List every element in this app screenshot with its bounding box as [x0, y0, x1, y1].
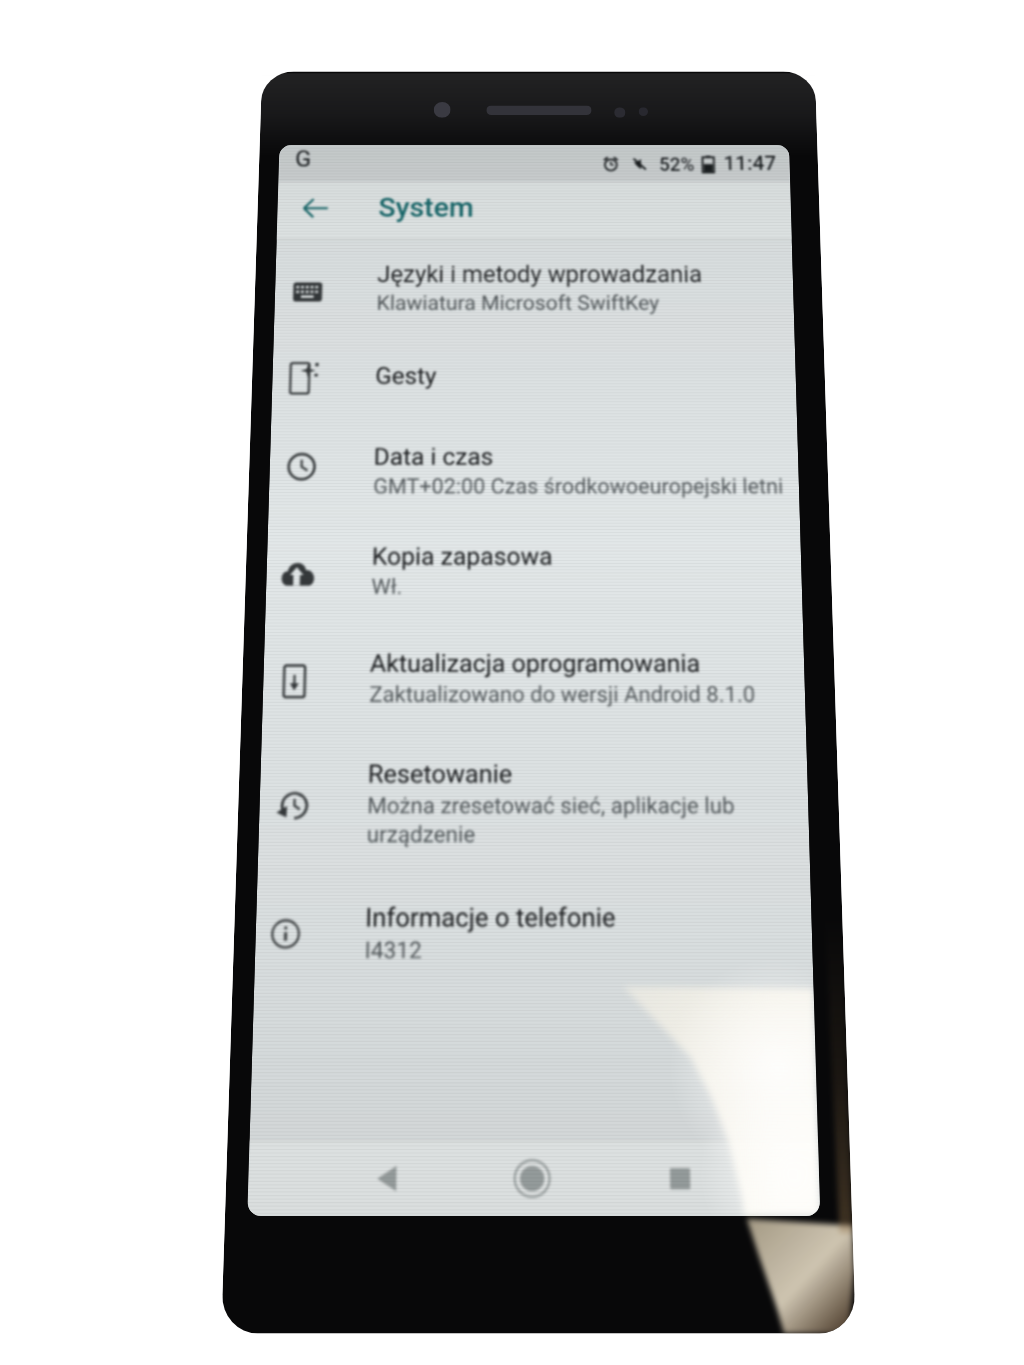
- button[interactable]: Back: [293, 188, 338, 229]
- staticText: Zaktualizowano do wersji Android 8.1.0: [369, 682, 756, 708]
- staticText: Data i czas: [373, 443, 494, 470]
- button[interactable]: Gesty: [271, 344, 797, 411]
- staticText: GMT+02:00 Czas środkowoeuropejski letni: [373, 474, 784, 499]
- button[interactable]: Home: [500, 1140, 563, 1216]
- staticText: 52%: [659, 154, 695, 174]
- button[interactable]: Recents: [647, 1140, 712, 1216]
- staticText: Informacje o telefonie: [365, 902, 616, 933]
- staticText: Resetowanie: [368, 759, 513, 789]
- button[interactable]: Resetowanie: [259, 739, 809, 833]
- staticText: Języki i metody wprowadzania: [377, 261, 703, 288]
- staticText: Aktualizacja oprogramowania: [370, 649, 701, 678]
- button[interactable]: Informacje o telefonie: [254, 882, 813, 978]
- staticText: 11:47: [723, 152, 777, 175]
- staticText: Gesty: [375, 362, 437, 389]
- button[interactable]: Kopia zapasowa: [265, 523, 803, 613]
- staticText: Klawiatura Microsoft SwiftKey: [376, 291, 660, 315]
- staticText: Wł.: [371, 574, 403, 600]
- button[interactable]: Aktualizacja oprogramowania: [262, 629, 806, 721]
- button[interactable]: Data i czas: [268, 424, 800, 512]
- button[interactable]: Języki i metody wprowadzania: [274, 243, 794, 327]
- staticText: Kopia zapasowa: [372, 542, 553, 570]
- staticText: System: [378, 191, 474, 223]
- staticText: G: [295, 146, 312, 172]
- button[interactable]: Back: [354, 1140, 419, 1216]
- staticText: Można zresetować sieć, aplikacje lub urz…: [366, 793, 799, 848]
- staticText: I4312: [364, 937, 423, 965]
